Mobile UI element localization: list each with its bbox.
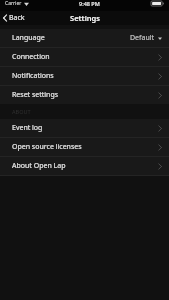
button[interactable]: Connection [0, 48, 169, 66]
staticText: 9:48 PM [79, 0, 100, 7]
staticText: Settings [70, 13, 100, 23]
button[interactable]: About Open Lap [0, 157, 169, 175]
staticText: Back [9, 13, 25, 23]
staticText: Open source licenses [12, 142, 82, 152]
staticText: Language [12, 33, 45, 43]
other: Open About Open Lap [158, 163, 162, 170]
staticText: Event log [12, 123, 43, 133]
other: Open Connection [158, 54, 162, 61]
button[interactable]: Language [0, 29, 169, 47]
button[interactable]: Open source licenses [0, 138, 169, 156]
staticText: Default [130, 33, 155, 43]
other: Open Notifications [158, 73, 162, 80]
other: Open Reset settings [158, 92, 162, 99]
other: Open Event log [158, 125, 162, 132]
button[interactable]: Event log [0, 119, 169, 137]
staticText: ABOUT [12, 108, 31, 115]
staticText: About Open Lap [12, 161, 66, 171]
staticText: Notifications [12, 71, 54, 81]
button[interactable]: Back [0, 11, 30, 25]
button[interactable]: Reset settings [0, 86, 169, 104]
staticText: Reset settings [12, 90, 59, 100]
other: Open Open source licenses [158, 144, 162, 151]
staticText: Connection [12, 52, 50, 62]
staticText: Carrier [5, 0, 22, 7]
button[interactable]: Notifications [0, 67, 169, 85]
